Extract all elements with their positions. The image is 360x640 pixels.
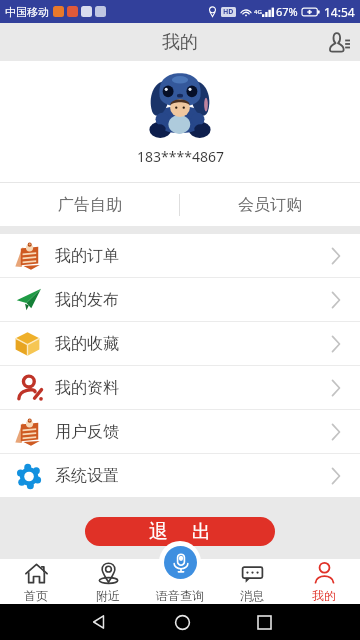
button[interactable]: 广告自助 xyxy=(0,183,179,226)
staticText: 出 xyxy=(192,520,211,544)
button[interactable]: Home xyxy=(165,605,199,639)
button[interactable]: 我的收藏 xyxy=(0,322,360,365)
button[interactable]: Back xyxy=(82,605,116,639)
button[interactable]: 系统设置 xyxy=(0,454,360,497)
staticText: 附近 xyxy=(96,588,120,603)
staticText: 广告自助 xyxy=(58,195,122,215)
staticText: 会员订购 xyxy=(238,195,302,215)
staticText: 中国移动 xyxy=(5,5,49,19)
staticText: 4G xyxy=(254,8,262,16)
button[interactable]: 退 xyxy=(85,517,275,546)
button[interactable]: 我的 xyxy=(288,559,360,604)
staticText: 我的 xyxy=(162,31,198,54)
staticText: 系统设置 xyxy=(55,466,119,486)
button[interactable]: 首页 xyxy=(0,559,72,604)
staticText: 67% xyxy=(276,4,298,19)
staticText: 消息 xyxy=(240,588,264,603)
staticText: HD xyxy=(223,7,234,17)
button[interactable]: 会员订购 xyxy=(180,183,360,226)
button[interactable]: Contacts xyxy=(320,23,358,61)
staticText: 我的收藏 xyxy=(55,334,119,354)
button[interactable]: 我的发布 xyxy=(0,278,360,321)
staticText: 首页 xyxy=(24,588,48,603)
staticText: 我的订单 xyxy=(55,246,119,266)
button[interactable]: 消息 xyxy=(216,559,288,604)
button[interactable]: 我的资料 xyxy=(0,366,360,409)
button[interactable]: 用户反馈 xyxy=(0,410,360,453)
staticText: 14:54 xyxy=(324,4,355,20)
staticText: 退 xyxy=(149,520,168,544)
staticText: 用户反馈 xyxy=(55,422,119,442)
button[interactable]: 我的订单 xyxy=(0,234,360,277)
button[interactable]: 语音查询 xyxy=(164,546,197,579)
staticText: 我的发布 xyxy=(55,290,119,310)
button[interactable]: 附近 xyxy=(72,559,144,604)
staticText: 语音查询 xyxy=(156,588,204,603)
staticText: 我的 xyxy=(312,588,336,603)
button[interactable]: Recents xyxy=(247,605,281,639)
staticText: 我的资料 xyxy=(55,378,119,398)
button[interactable]: 语音查询 xyxy=(144,559,216,604)
staticText: 183****4867 xyxy=(137,147,224,166)
